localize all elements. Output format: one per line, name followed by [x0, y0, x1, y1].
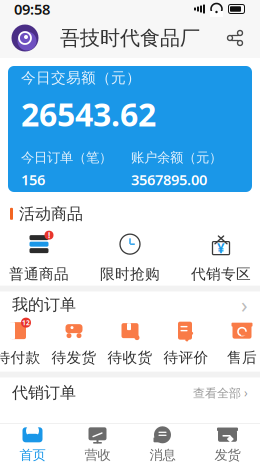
staticText: 今日订单（笔） [21, 149, 112, 166]
staticText: 3567895.00 [131, 170, 207, 189]
button[interactable]: 待收货 [106, 318, 154, 368]
staticText: 限时抢购 [100, 265, 160, 283]
staticText: ¥ [217, 239, 225, 257]
staticText: 活动商品 [19, 204, 83, 224]
staticText: ! [48, 230, 50, 240]
staticText: 普通商品 [9, 265, 69, 283]
staticText: 营收 [84, 447, 110, 463]
button[interactable]: 待评价 [162, 318, 210, 368]
staticText: 我的订单 [12, 295, 76, 314]
staticText: 12 [22, 318, 30, 327]
staticText: › [241, 290, 248, 319]
staticText: 待发货 [51, 349, 96, 367]
staticText: 09:58 [14, 0, 50, 19]
button[interactable]: 消息 [130, 424, 195, 464]
button[interactable]: 发货 [195, 424, 260, 464]
staticText: 待评价 [163, 349, 208, 367]
staticText: 账户余额（元） [131, 149, 222, 166]
button[interactable]: 待发货 [50, 318, 98, 368]
button[interactable]: 我的订单 [0, 292, 260, 318]
button[interactable]: 12 [0, 318, 42, 368]
staticText: 查看全部 › [193, 385, 248, 401]
staticText: 首页 [19, 447, 45, 463]
button[interactable]: 首页 [0, 424, 65, 464]
staticText: 代销订单 [12, 383, 76, 402]
button[interactable]: 店铺头像 [8, 21, 42, 55]
staticText: 发货 [214, 447, 240, 463]
staticText: 今日交易额（元） [21, 69, 141, 87]
button[interactable]: 分享 [218, 21, 252, 55]
staticText: 代销专区 [191, 265, 251, 283]
button[interactable]: 代销订单 [0, 378, 260, 408]
button[interactable]: ! [0, 228, 78, 286]
button[interactable]: 售后 [218, 318, 260, 368]
staticText: 售后 [227, 349, 257, 367]
staticText: 156 [21, 170, 45, 189]
staticText: 消息 [149, 447, 175, 463]
button[interactable]: ¥ [182, 228, 260, 286]
staticText: 待收货 [107, 349, 152, 367]
staticText: 26543.62 [21, 93, 156, 135]
button[interactable]: 营收 [65, 424, 130, 464]
button[interactable]: 限时抢购 [91, 228, 169, 286]
staticText: 吾技时代食品厂 [60, 26, 200, 50]
staticText: 待付款 [0, 349, 40, 367]
